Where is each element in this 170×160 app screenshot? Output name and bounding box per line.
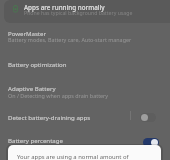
button[interactable]: Adaptive Battery [0,79,170,108]
staticText: Battery optimization [8,60,67,68]
button[interactable]: Toggle switch [143,138,159,147]
button[interactable]: Battery status [4,0,170,23]
staticText: Phone has typical background battery usa… [24,9,133,16]
staticText: Apps are running normally [24,3,105,12]
staticText: On / Detecting when apps drain battery [8,92,109,99]
button[interactable]: PowerMaster [0,25,170,54]
button[interactable]: Battery optimization [0,54,170,77]
staticText: PowerMaster [8,29,47,37]
button[interactable]: Detect battery-draining apps [0,108,170,131]
other: Battery status [13,5,18,12]
button[interactable]: Battery percentage [0,131,170,154]
button[interactable]: Toggle switch [140,113,156,122]
staticText: Adaptive Battery [8,84,56,92]
staticText: Detect battery-draining apps [8,113,91,121]
staticText: Battery modes, Battery care, Auto-start … [8,36,132,43]
staticText: Battery percentage [8,136,63,144]
staticText: Your apps are using a normal amount of [17,153,129,160]
